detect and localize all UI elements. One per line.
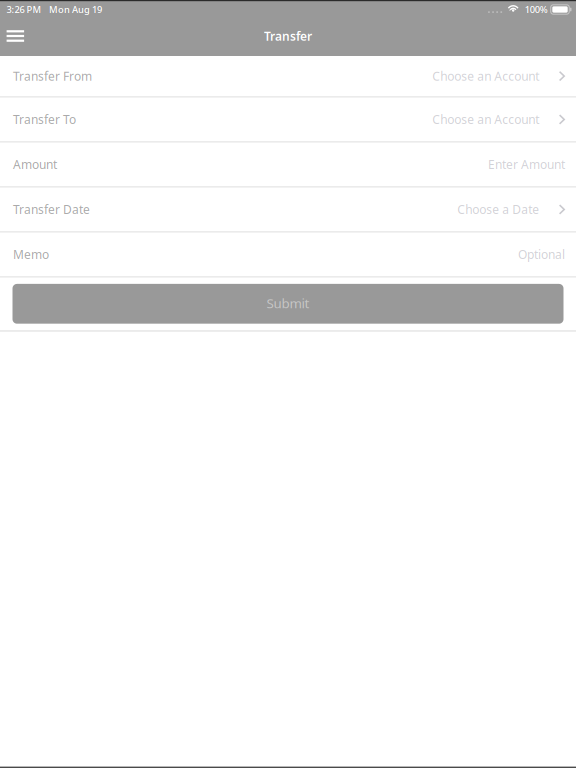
staticText: Transfer Date (13, 201, 90, 217)
staticText: Enter Amount (488, 156, 565, 172)
button[interactable]: Amount (0, 143, 576, 188)
staticText: Optional (518, 246, 565, 262)
button[interactable]: Memo (0, 233, 576, 278)
button[interactable]: Transfer From (0, 56, 576, 98)
staticText: Choose a Date (457, 201, 539, 217)
staticText: Transfer From (13, 68, 92, 84)
staticText: 100% (525, 3, 548, 16)
staticText: Transfer (264, 28, 312, 44)
staticText: Memo (13, 246, 49, 262)
button[interactable]: Transfer To (0, 98, 576, 143)
button[interactable]: Menu (0, 22, 36, 53)
staticText: Transfer To (13, 111, 76, 127)
staticText: Choose an Account (432, 111, 539, 127)
staticText: Mon Aug 19 (49, 3, 102, 16)
staticText: Amount (13, 156, 57, 172)
staticText: Choose an Account (432, 68, 539, 84)
staticText: Submit (266, 294, 309, 312)
button[interactable]: Transfer Date (0, 188, 576, 233)
button[interactable]: Submit (12, 284, 563, 324)
staticText: 3:26 PM (6, 3, 41, 16)
